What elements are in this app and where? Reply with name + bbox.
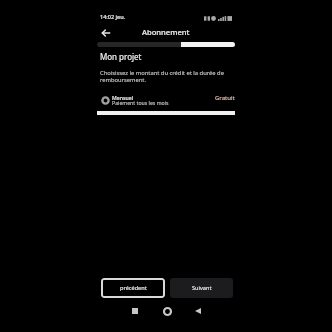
button[interactable]: Recent apps	[129, 305, 141, 317]
staticText: Mensuel	[112, 94, 134, 101]
staticText: 14:02 jeu.	[100, 13, 126, 20]
staticText: précédent	[120, 284, 147, 292]
button[interactable]: Home	[161, 305, 173, 317]
staticText: Choisissez le montant du crédit et la du…	[100, 69, 238, 84]
staticText: Mon projet	[100, 51, 142, 62]
staticText: Gratuit	[215, 94, 235, 102]
staticText: Paiement tous les mois	[112, 99, 169, 106]
button[interactable]: Back	[192, 305, 204, 317]
button[interactable]: Mensuel	[101, 92, 237, 109]
button[interactable]: précédent	[101, 278, 165, 298]
button[interactable]: Back	[98, 25, 114, 41]
button[interactable]: Suivant	[170, 278, 233, 298]
staticText: Abonnement	[142, 27, 190, 37]
staticText: Suivant	[192, 284, 212, 292]
